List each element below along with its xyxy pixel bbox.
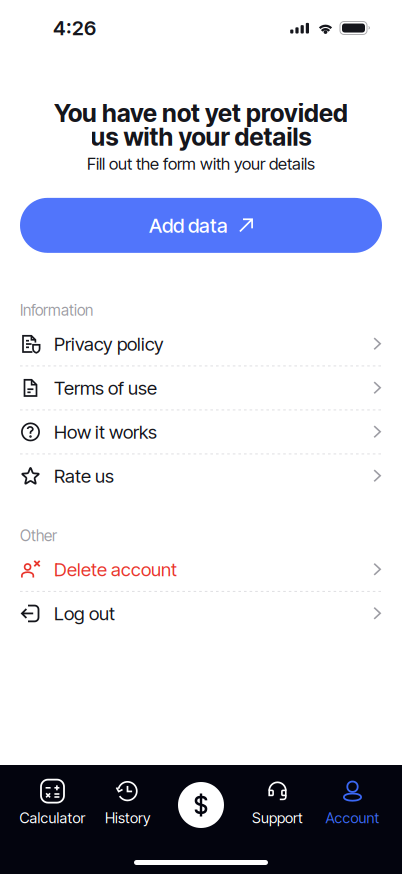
staticText: Information — [20, 301, 93, 319]
staticText: Support — [252, 809, 303, 827]
staticText: Add data — [149, 213, 228, 237]
staticText: Terms of use — [54, 377, 157, 399]
staticText: 4:26 — [53, 16, 96, 40]
staticText: Rate us — [54, 465, 114, 487]
button[interactable]: Delete account — [0, 548, 402, 591]
button[interactable]: Add data — [0, 198, 402, 253]
staticText: History — [105, 809, 150, 827]
button[interactable]: How it works — [0, 410, 402, 453]
staticText: Calculator — [19, 809, 85, 827]
staticText: How it works — [54, 421, 157, 443]
staticText: Log out — [54, 602, 115, 625]
button[interactable]: Log out — [0, 592, 402, 635]
staticText: Other — [20, 526, 57, 545]
staticText: Fill out the form with your details — [87, 154, 315, 174]
staticText: us with your details — [90, 122, 311, 152]
staticText: Delete account — [54, 558, 177, 581]
staticText: You have not yet provided — [54, 98, 348, 128]
button[interactable]: Privacy policy — [0, 322, 402, 365]
staticText: Account — [325, 809, 379, 827]
button[interactable]: New calculation — [178, 782, 224, 828]
staticText: Privacy policy — [54, 333, 164, 355]
button[interactable]: History — [90, 780, 165, 826]
button[interactable]: Support — [240, 780, 315, 826]
button[interactable]: Account — [315, 780, 390, 826]
button[interactable]: Terms of use — [0, 366, 402, 409]
button[interactable]: Rate us — [0, 454, 402, 497]
button[interactable]: Calculator — [15, 780, 90, 826]
